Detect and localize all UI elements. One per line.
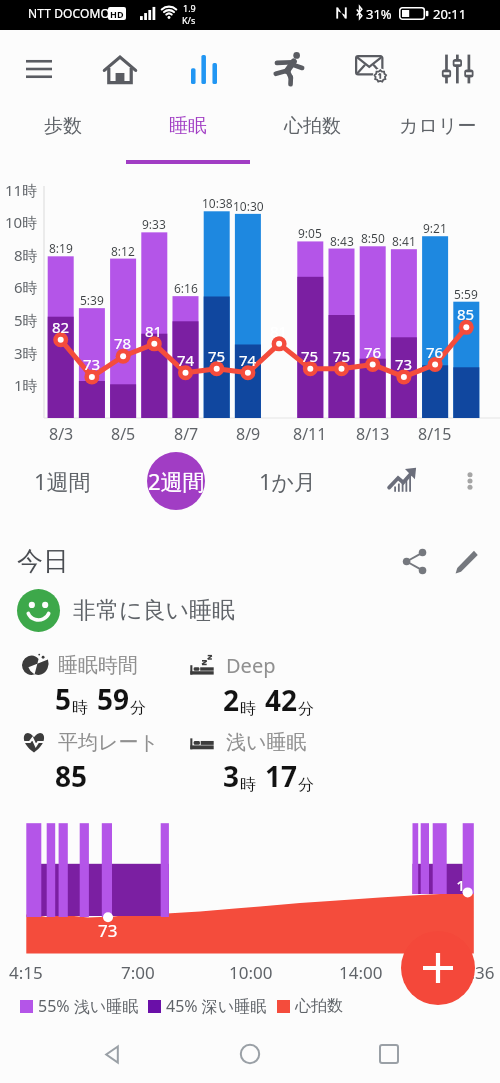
staticText: 17:36 — [451, 961, 495, 984]
staticText: 9:05 — [298, 225, 322, 239]
staticText: カロリー — [399, 114, 477, 138]
button[interactable]: 心拍数 — [250, 88, 375, 164]
staticText: 分 — [130, 698, 146, 718]
staticText: 5時 — [14, 310, 38, 330]
button[interactable]: Settings — [429, 40, 487, 98]
button[interactable]: Menu — [10, 40, 68, 98]
staticText: 76 — [364, 342, 382, 358]
staticText: 78 — [114, 333, 132, 349]
button[interactable]: More options — [446, 449, 494, 513]
staticText: 8/9 — [236, 423, 261, 445]
button[interactable]: Home — [223, 1027, 277, 1081]
staticText: 9:21 — [423, 220, 447, 234]
staticText: 8:43 — [330, 233, 354, 247]
staticText: 10:30 — [233, 198, 264, 212]
staticText: 2 — [223, 681, 240, 719]
staticText: 時 — [240, 775, 256, 795]
staticText: 1.9 — [183, 2, 196, 14]
staticText: 104 — [456, 875, 474, 891]
staticText: 31% — [366, 5, 392, 23]
staticText: 睡眠 — [169, 114, 207, 138]
button[interactable]: Recents — [362, 1027, 416, 1081]
staticText: 81 — [270, 321, 288, 337]
staticText: 45% 深い睡眠 — [166, 995, 267, 1017]
staticText: 55% 浅い睡眠 — [38, 995, 139, 1017]
staticText: 5:39 — [80, 292, 104, 306]
staticText: 20:11 — [433, 5, 467, 23]
staticText: 浅い睡眠 — [226, 730, 307, 755]
staticText: Deep — [226, 652, 276, 679]
button[interactable]: 1か月 — [228, 446, 348, 516]
staticText: 6:16 — [174, 280, 198, 294]
staticText: 2週間 — [148, 466, 205, 496]
staticText: 85 — [55, 757, 88, 795]
staticText: 42 — [265, 681, 298, 719]
staticText: 76 — [426, 342, 444, 358]
staticText: 睡眠時間 — [58, 653, 138, 678]
staticText: 5 — [55, 680, 72, 718]
staticText: 時 — [240, 699, 256, 719]
button[interactable]: カロリー — [375, 88, 500, 164]
staticText: 59 — [97, 680, 130, 718]
button[interactable]: 2週間 — [124, 446, 228, 516]
staticText: 7:00 — [121, 961, 155, 984]
staticText: 5:59 — [454, 286, 478, 300]
staticText: 心拍数 — [284, 114, 341, 138]
staticText: 分 — [298, 699, 314, 719]
staticText: NTT DOCOMO — [28, 5, 110, 21]
staticText: 10:00 — [229, 961, 273, 984]
staticText: 73 — [83, 354, 101, 370]
staticText: 73 — [395, 354, 413, 370]
staticText: 8:41 — [392, 233, 416, 247]
staticText: 分 — [298, 775, 314, 795]
staticText: 14:00 — [339, 961, 383, 984]
staticText: 8/15 — [418, 423, 452, 445]
staticText: 3 — [223, 757, 240, 795]
staticText: K/s — [182, 14, 196, 26]
button[interactable]: 睡眠 — [125, 88, 250, 164]
staticText: 82 — [52, 317, 70, 333]
staticText: 4:15 — [9, 961, 43, 984]
staticText: 8:12 — [111, 243, 135, 257]
staticText: 75 — [333, 346, 351, 362]
staticText: 8/5 — [111, 423, 136, 445]
staticText: 73 — [98, 919, 118, 937]
button[interactable]: Activity — [259, 40, 317, 98]
button[interactable]: Trends — [370, 449, 434, 513]
staticText: 75 — [301, 346, 319, 362]
button[interactable]: Add — [401, 931, 475, 1005]
staticText: 75 — [208, 346, 226, 362]
staticText: 8:19 — [49, 240, 73, 254]
staticText: 3時 — [14, 343, 38, 363]
button[interactable]: Home — [91, 40, 149, 98]
staticText: 74 — [177, 350, 195, 366]
staticText: 85 — [457, 304, 475, 320]
staticText: 17 — [265, 757, 298, 795]
staticText: 8:50 — [361, 230, 385, 244]
button[interactable]: 1週間 — [0, 446, 124, 516]
staticText: 時 — [72, 698, 88, 718]
staticText: 8/13 — [356, 423, 390, 445]
button[interactable]: 歩数 — [0, 88, 125, 164]
button[interactable]: Charts — [175, 40, 233, 98]
staticText: 8/11 — [293, 423, 327, 445]
staticText: 非常に良い睡眠 — [73, 596, 236, 625]
button[interactable]: Edit — [442, 536, 492, 586]
button[interactable]: Share — [390, 536, 440, 586]
staticText: 平均レート — [58, 730, 159, 755]
button[interactable]: Messages — [342, 40, 400, 98]
staticText: 1時 — [14, 375, 38, 395]
staticText: 74 — [239, 350, 257, 366]
staticText: 10:38 — [202, 195, 233, 209]
staticText: 8/7 — [174, 423, 199, 445]
staticText: 今日 — [17, 545, 69, 578]
staticText: 9:33 — [142, 216, 166, 230]
button[interactable]: Back — [85, 1027, 139, 1081]
staticText: 1か月 — [259, 466, 317, 496]
staticText: 11時 — [5, 180, 38, 200]
staticText: 心拍数 — [295, 996, 343, 1016]
staticText: HD — [110, 8, 124, 20]
staticText: 10時 — [5, 212, 38, 232]
staticText: 81 — [145, 321, 163, 337]
staticText: 8時 — [14, 245, 38, 265]
